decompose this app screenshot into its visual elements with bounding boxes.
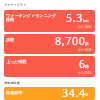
- staticText: 歩: [85, 41, 89, 46]
- staticText: 8,700: [55, 34, 86, 48]
- button[interactable]: 上った階数: [4, 56, 95, 77]
- staticText: アクティビティ: [4, 3, 27, 7]
- button[interactable]: 体脂肪率: [4, 87, 95, 100]
- button[interactable]: 歩数: [4, 34, 95, 54]
- staticText: 昨日 20:08: [78, 48, 92, 52]
- staticText: 上った階数: [6, 59, 46, 64]
- staticText: 身体測定値: [4, 81, 20, 85]
- staticText: km: [83, 18, 89, 23]
- staticText: %: [85, 92, 89, 97]
- staticText: 34.4: [62, 87, 86, 99]
- staticText: 階: [85, 64, 89, 69]
- staticText: 歩数: [6, 37, 46, 42]
- staticText: 5.3: [66, 11, 84, 25]
- staticText: 6: [79, 57, 86, 71]
- button[interactable]: ウォーキング＋ランニング距離: [4, 10, 95, 32]
- staticText: 昨日 20:08: [78, 25, 92, 29]
- staticText: 昨日 20:08: [78, 71, 92, 75]
- staticText: ウォーキング＋ランニング距離: [6, 13, 60, 22]
- staticText: 体脂肪率: [6, 90, 46, 95]
